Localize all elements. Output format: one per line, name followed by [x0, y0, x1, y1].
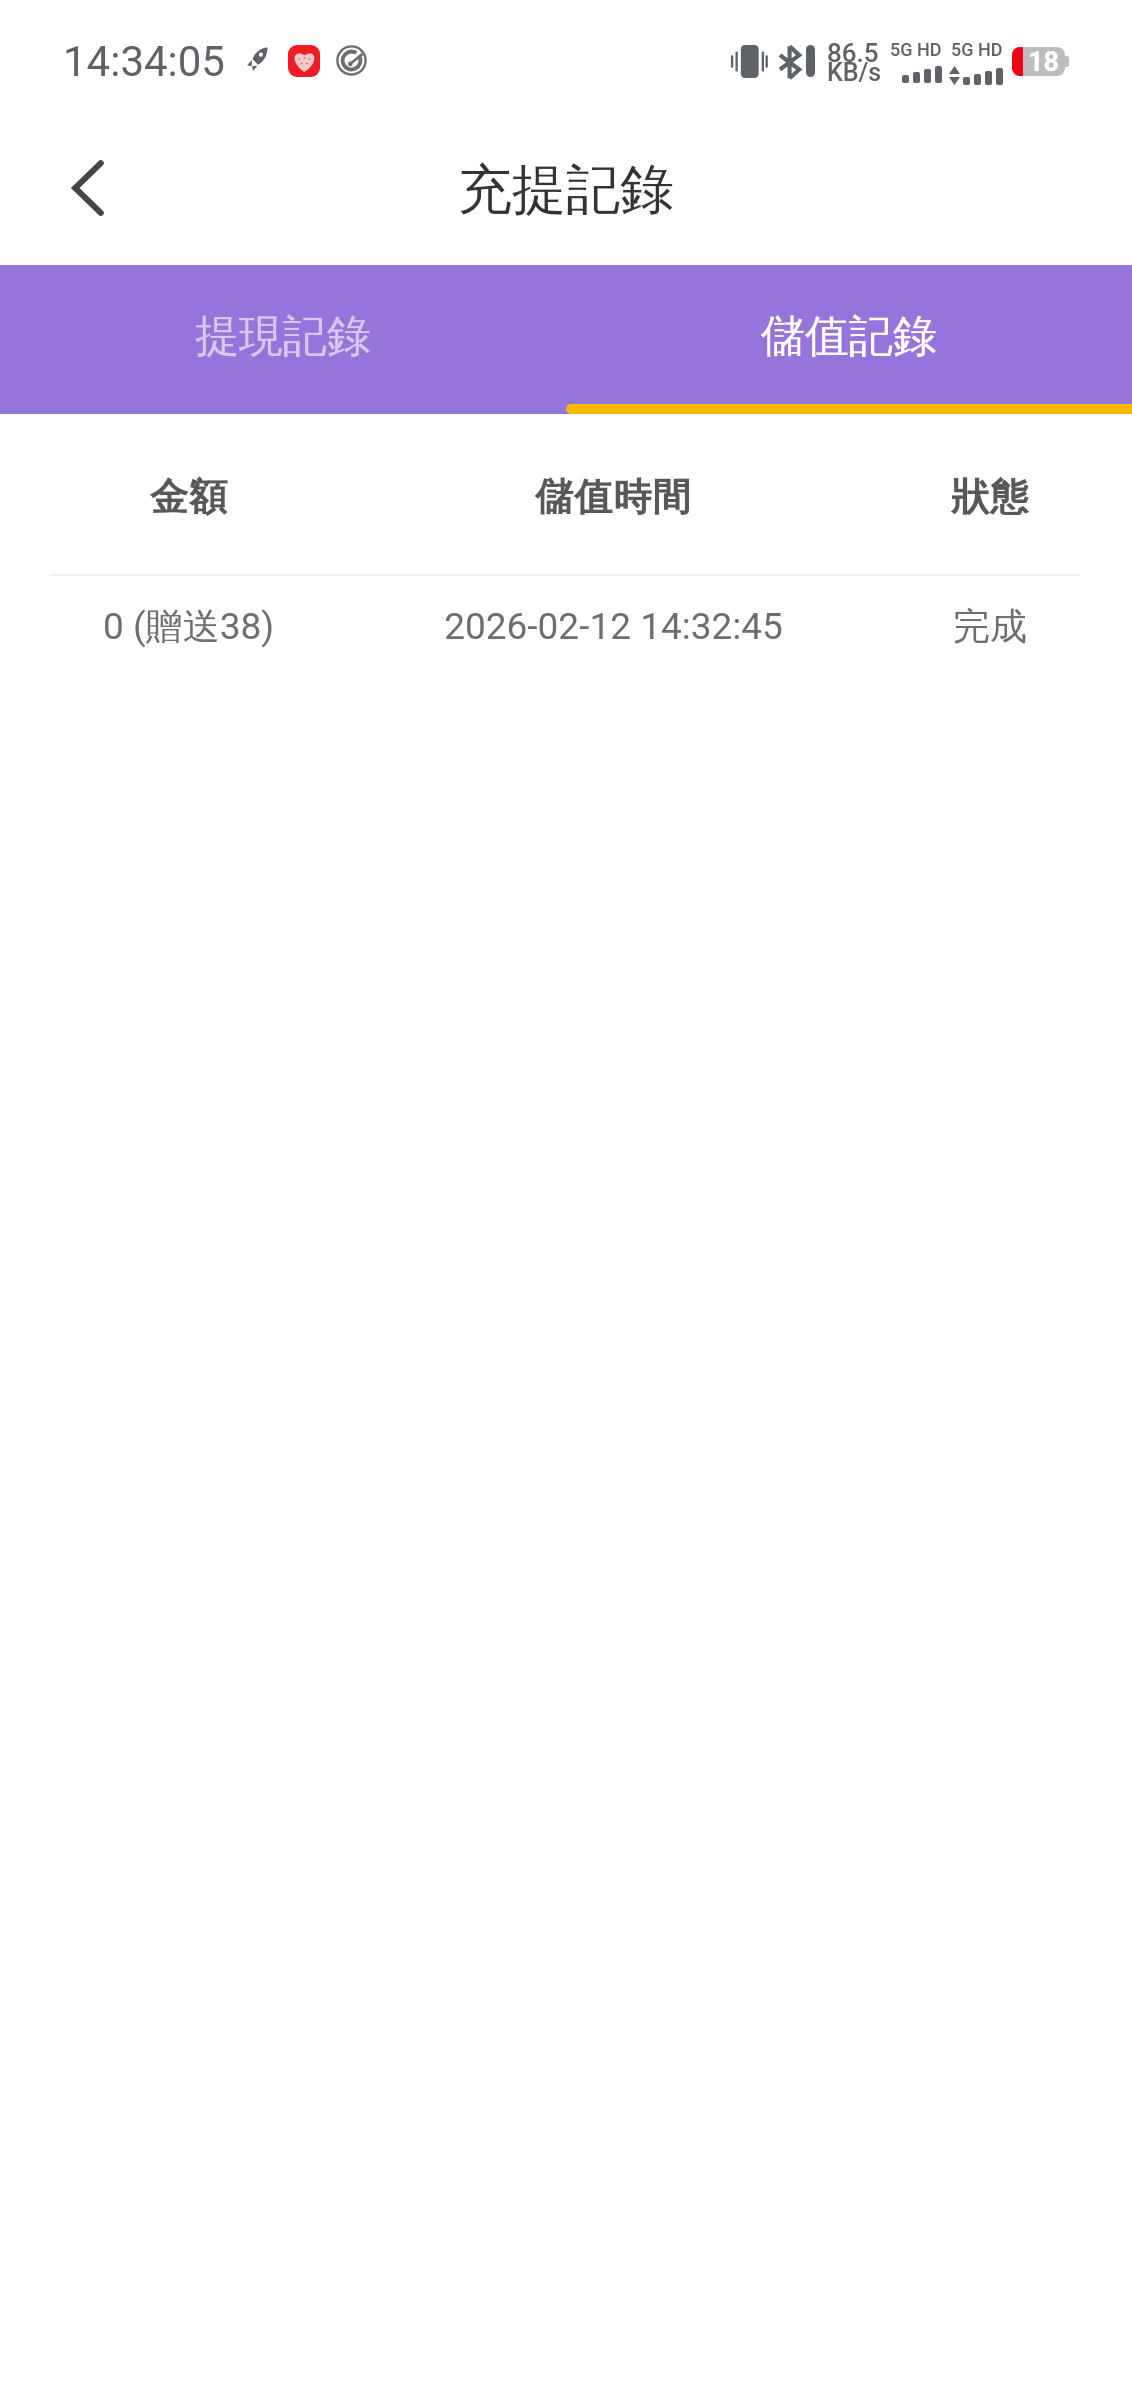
staticText: 86.5 — [827, 38, 879, 68]
staticText: 完成 — [953, 603, 1027, 650]
staticText: 14:34:05 — [63, 37, 225, 86]
staticText: KB/s — [827, 58, 882, 87]
staticText: 儲值時間 — [535, 473, 692, 521]
staticText: 0 (贈送38) — [103, 603, 275, 650]
staticText: 儲值記錄 — [761, 309, 937, 364]
staticText: 18 — [1028, 47, 1059, 75]
staticText: 5G HD — [890, 39, 942, 60]
staticText: 狀態 — [951, 473, 1030, 521]
button[interactable]: 提現記錄 — [0, 265, 566, 414]
button[interactable]: Back — [28, 128, 148, 248]
staticText: 5G HD — [951, 39, 1003, 60]
staticText: 充提記錄 — [458, 156, 674, 224]
staticText: 2026-02-12 14:32:45 — [444, 605, 783, 648]
button[interactable]: 0 (贈送38) — [0, 576, 1132, 680]
button[interactable]: 儲值記錄 — [566, 265, 1132, 414]
staticText: 提現記錄 — [195, 309, 371, 364]
staticText: 金額 — [150, 473, 229, 521]
